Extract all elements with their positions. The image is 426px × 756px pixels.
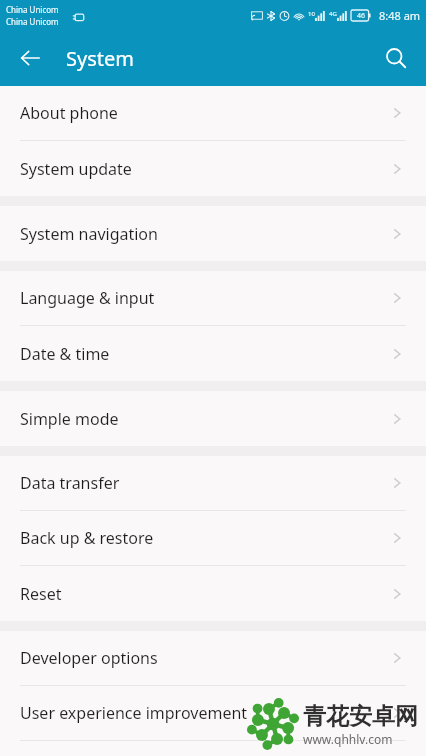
button[interactable]: About phone — [0, 86, 426, 141]
button[interactable]: Back up & restore — [0, 511, 426, 566]
staticText: System — [66, 45, 134, 72]
staticText: Simple mode — [20, 408, 119, 430]
staticText: System update — [20, 158, 132, 180]
staticText: Date & time — [20, 343, 110, 365]
button[interactable]: Date & time — [0, 326, 426, 381]
staticText: China Unicom — [6, 16, 59, 27]
button[interactable]: Reset — [0, 566, 426, 621]
button[interactable]: Search — [374, 36, 418, 80]
button[interactable]: Simple mode — [0, 391, 426, 446]
staticText: Developer options — [20, 647, 158, 669]
button[interactable]: Data transfer — [0, 456, 426, 511]
staticText: About phone — [20, 102, 118, 124]
staticText: Language & input — [20, 287, 155, 309]
staticText: 10 — [308, 10, 315, 18]
button[interactable]: User experience improvement — [0, 686, 426, 741]
staticText: 4G — [329, 10, 337, 18]
staticText: 8:48 am — [379, 8, 421, 23]
staticText: System navigation — [20, 223, 158, 245]
staticText: User experience improvement — [20, 702, 248, 724]
button[interactable]: System navigation — [0, 206, 426, 261]
staticText: Reset — [20, 583, 62, 605]
button[interactable]: System update — [0, 141, 426, 196]
button[interactable]: Developer options — [0, 631, 426, 686]
staticText: Back up & restore — [20, 527, 154, 549]
button[interactable]: Language & input — [0, 271, 426, 326]
staticText: 46 — [357, 11, 366, 21]
staticText: www.qhhlv.com — [303, 731, 393, 747]
staticText: Data transfer — [20, 472, 120, 494]
button[interactable]: Back — [8, 36, 52, 80]
staticText: 青花安卓网 — [303, 702, 418, 731]
staticText: China Unicom — [6, 4, 59, 15]
